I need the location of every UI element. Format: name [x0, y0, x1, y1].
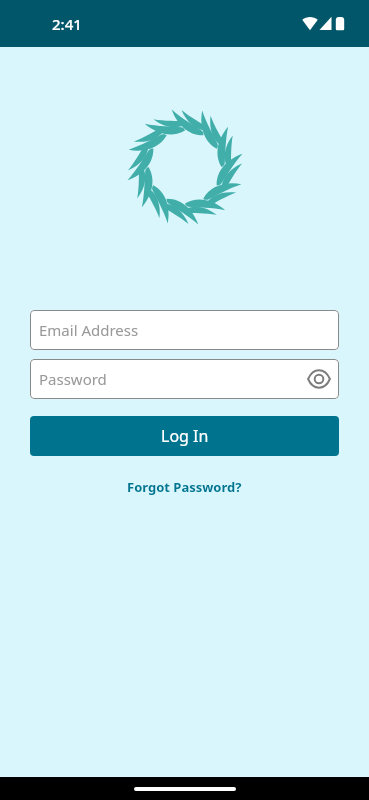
button[interactable]: Forgot Password? — [123, 474, 246, 500]
button[interactable]: Show password — [305, 365, 333, 393]
button[interactable]: Log In — [30, 416, 339, 456]
staticText: Log In — [161, 425, 209, 447]
staticText: Email Address — [39, 320, 139, 340]
button[interactable]: Password — [30, 359, 339, 399]
staticText: 2:41 — [52, 14, 82, 34]
staticText: Password — [39, 369, 107, 389]
button[interactable]: Email Address — [30, 310, 339, 350]
